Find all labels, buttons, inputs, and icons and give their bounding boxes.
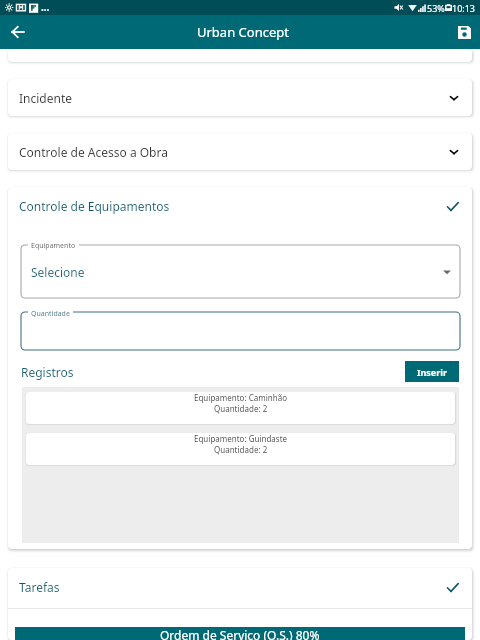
staticText: ... [41,0,50,14]
button[interactable]: Save [449,17,480,48]
button[interactable]: Inserir [405,361,459,382]
staticText: Quantidade: 2 [214,403,268,414]
button[interactable]: Incidente [8,79,472,116]
button[interactable]: Equipamento: Guindaste [26,433,455,465]
button[interactable]: Controle de Equipamentos [8,187,472,225]
staticText: Equipamento [31,241,76,251]
button[interactable]: Controle de Acesso a Obra [8,133,472,170]
staticText: Quantidade [31,309,70,319]
staticText: 53% [427,2,445,14]
button[interactable]: Back [2,16,34,48]
staticText: Registros [21,364,74,380]
staticText: Controle de Equipamentos [19,198,170,214]
staticText: Selecione [31,264,85,280]
button[interactable]: Equipamento: Caminhão [26,392,455,424]
staticText: Inserir [417,366,447,378]
button[interactable]: Tarefas [8,568,472,608]
staticText: 10:13 [452,2,476,14]
staticText: Tarefas [19,579,60,595]
button[interactable] [21,312,460,350]
staticText: Quantidade: 2 [214,444,268,455]
staticText: Controle de Acesso a Obra [19,144,168,160]
staticText: Urban Concept [197,23,289,41]
staticText: Equipamento: Guindaste [194,433,288,444]
staticText: Equipamento: Caminhão [194,392,287,403]
staticText: Ordem de Serviço (O.S.) 80% [160,627,320,640]
button[interactable] [21,245,460,298]
staticText: Incidente [19,90,73,106]
button[interactable]: Ordem de Serviço (O.S.) 80% [15,627,465,640]
